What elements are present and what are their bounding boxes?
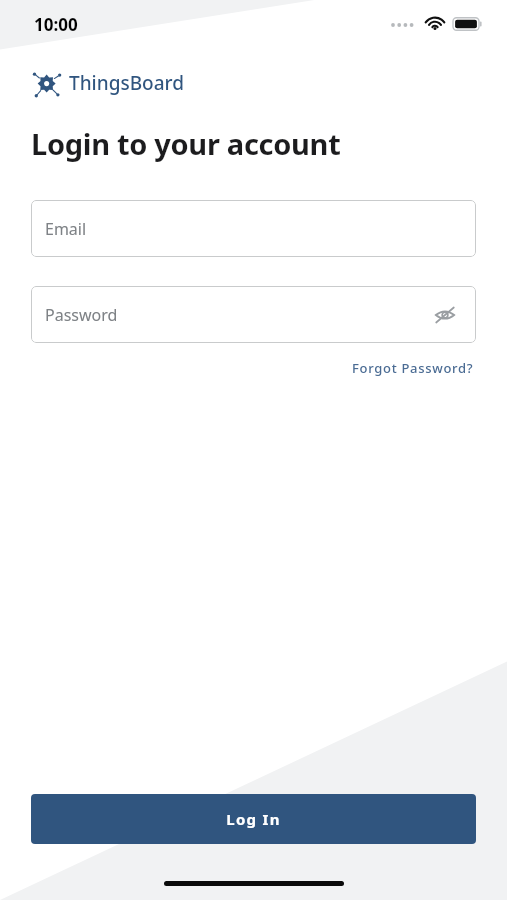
staticText: Email xyxy=(45,218,87,240)
button[interactable]: ThingsBoard xyxy=(31,68,184,98)
staticText: 10:00 xyxy=(34,13,78,36)
staticText: Forgot Password? xyxy=(352,359,474,377)
button[interactable]: Show password xyxy=(428,298,462,332)
staticText: ThingsBoard xyxy=(69,70,184,96)
button[interactable]: Forgot Password? xyxy=(350,356,476,380)
staticText: Login to your account xyxy=(31,124,341,163)
button[interactable]: Password xyxy=(31,286,476,343)
staticText: Password xyxy=(45,304,118,326)
button[interactable]: Log In xyxy=(31,794,476,844)
staticText: Log In xyxy=(226,809,281,829)
button[interactable]: Email xyxy=(31,200,476,257)
